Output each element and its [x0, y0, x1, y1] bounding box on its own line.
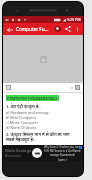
button[interactable]: Advertisement [3, 145, 83, 161]
staticText: COMPUTER FUNDAMENTALS [7, 96, 58, 101]
staticText: सबसे महत्वपूर्ण है:- [6, 137, 80, 142]
staticText: Account [5, 153, 22, 158]
staticText: 10% PA? Invest in a 2nd Rated FD [44, 149, 81, 153]
button[interactable]: Share [63, 24, 73, 34]
staticText: Computer Fu... [16, 26, 53, 32]
staticText: 3:20 PM [67, 17, 81, 22]
staticText: b) Mini Computer [6, 115, 80, 120]
staticText: a) Hardware and storage [6, 110, 80, 115]
staticText: Mobi Savings [5, 148, 32, 153]
button[interactable]: Menu [74, 84, 81, 91]
button[interactable]: Image [5, 84, 12, 91]
staticText: c) Micro Computer [6, 120, 80, 125]
button[interactable]: Back [5, 25, 14, 34]
button[interactable]: Bookmark [53, 24, 63, 34]
staticText: Why Save 2:10 when you can Earn [44, 145, 81, 149]
staticText: savings Guaranteed. [50, 153, 75, 157]
button[interactable]: More options [73, 25, 81, 33]
staticText: 2. कंप्यूटर सिस्टम भाग में से कौन सा भाग [6, 132, 80, 137]
staticText: 1. डेटा एंट्री कंप्यूटर है:- [6, 104, 80, 109]
staticText: Learn > [58, 158, 68, 161]
staticText: d) None Of above [6, 125, 80, 130]
